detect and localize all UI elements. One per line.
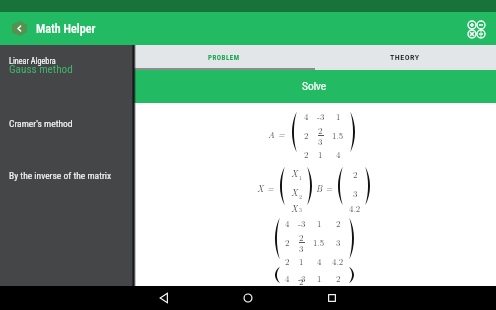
- staticText: B =: [316, 182, 333, 195]
- button[interactable]: Home: [236, 286, 260, 310]
- staticText: Solve: [302, 81, 327, 93]
- staticText: 2: [304, 129, 309, 141]
- button[interactable]: Cramer's method: [0, 115, 133, 131]
- button[interactable]: Gauss method: [0, 61, 133, 77]
- staticText: 1: [318, 148, 323, 160]
- staticText: 4: [317, 255, 322, 267]
- staticText: By the inverse of the matrix: [9, 170, 112, 181]
- staticText: 2: [299, 275, 304, 287]
- staticText: 2: [299, 192, 302, 200]
- button[interactable]: Solve: [133, 70, 496, 103]
- staticText: 2: [336, 217, 341, 229]
- staticText: 3: [299, 242, 304, 254]
- staticText: Cramer's method: [9, 118, 73, 129]
- staticText: THEORY: [390, 53, 420, 62]
- button[interactable]: Calculator: [465, 18, 487, 40]
- staticText: 1: [317, 217, 322, 229]
- staticText: Gauss method: [9, 63, 73, 76]
- button[interactable]: Back: [12, 21, 27, 36]
- staticText: 4: [336, 148, 341, 160]
- staticText: 1.5: [313, 236, 325, 248]
- staticText: 2: [285, 236, 290, 248]
- button[interactable]: Recent apps: [320, 286, 344, 310]
- staticText: X: [291, 202, 298, 212]
- staticText: 1: [299, 173, 302, 181]
- staticText: 2: [304, 148, 309, 160]
- staticText: 1: [336, 110, 341, 122]
- staticText: A =: [268, 128, 285, 141]
- button[interactable]: THEORY: [314, 45, 496, 70]
- staticText: 1: [317, 272, 322, 284]
- button[interactable]: Back: [152, 286, 176, 310]
- staticText: Math Helper: [36, 22, 96, 36]
- staticText: X =: [257, 182, 274, 195]
- staticText: X: [291, 167, 298, 180]
- staticText: 4.2: [332, 255, 344, 267]
- staticText: 2: [285, 255, 290, 267]
- staticText: 2: [299, 231, 304, 243]
- staticText: 2: [336, 272, 341, 284]
- staticText: -3: [317, 110, 325, 122]
- staticText: 3: [299, 205, 302, 213]
- staticText: 3: [336, 236, 341, 248]
- staticText: 4: [285, 217, 290, 229]
- staticText: Linear Algebra: [9, 56, 56, 66]
- staticText: 4: [304, 110, 309, 122]
- staticText: 2: [353, 168, 358, 180]
- staticText: -3: [298, 217, 306, 229]
- staticText: 1.5: [332, 129, 344, 141]
- button[interactable]: By the inverse of the matrix: [0, 167, 133, 183]
- staticText: 4.2: [349, 202, 361, 212]
- staticText: PROBLEM: [208, 54, 240, 62]
- staticText: 3: [318, 135, 323, 147]
- staticText: 3: [353, 187, 358, 199]
- staticText: -3: [298, 272, 306, 284]
- staticText: 1: [299, 255, 304, 267]
- button[interactable]: PROBLEM: [133, 45, 314, 70]
- staticText: X: [291, 186, 298, 199]
- staticText: 4: [285, 272, 290, 284]
- staticText: 2: [318, 124, 323, 136]
